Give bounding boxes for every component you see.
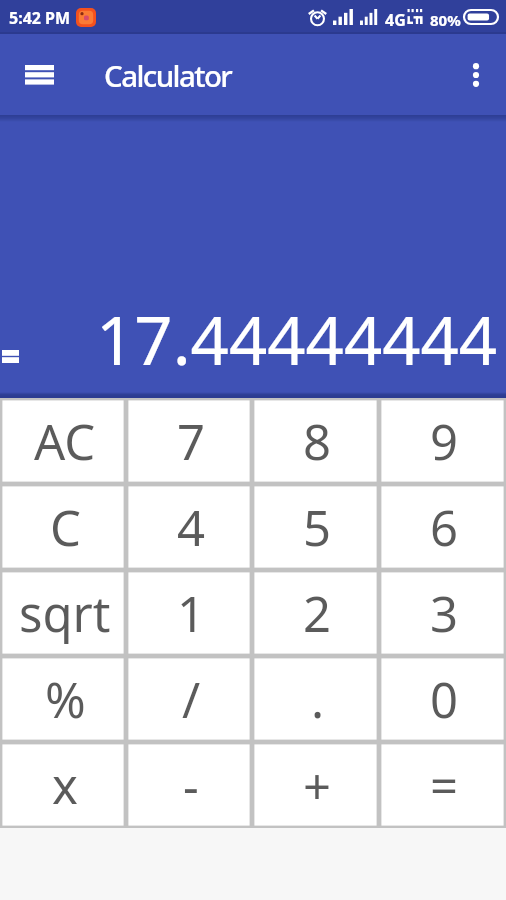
button[interactable]: C bbox=[0, 484, 126, 570]
staticText: 5 bbox=[303, 494, 332, 561]
staticText: 2 bbox=[303, 580, 332, 647]
staticText: 5:42 PM bbox=[9, 7, 71, 29]
button[interactable]: 9 bbox=[379, 398, 506, 484]
button[interactable]: 7 bbox=[126, 398, 252, 484]
staticText: 4 bbox=[177, 494, 206, 561]
staticText: x bbox=[52, 752, 78, 819]
staticText: + bbox=[303, 752, 332, 819]
staticText: - bbox=[183, 752, 199, 819]
staticText: 4G bbox=[385, 9, 406, 31]
button[interactable]: / bbox=[126, 656, 252, 742]
staticText: 6 bbox=[430, 494, 459, 561]
button[interactable]: 0 bbox=[379, 656, 506, 742]
button[interactable]: Menu bbox=[25, 65, 54, 85]
staticText: . bbox=[311, 666, 325, 733]
staticText: 7 bbox=[177, 408, 206, 475]
button[interactable]: . bbox=[252, 656, 379, 742]
button[interactable]: 5 bbox=[252, 484, 379, 570]
staticText: 3 bbox=[430, 580, 459, 647]
button[interactable]: = bbox=[379, 742, 506, 828]
staticText: 8 bbox=[303, 408, 332, 475]
button[interactable]: 1 bbox=[126, 570, 252, 656]
staticText: % bbox=[45, 666, 86, 733]
staticText: / bbox=[182, 666, 201, 733]
button[interactable]: sqrt bbox=[0, 570, 126, 656]
staticText: 0 bbox=[430, 666, 459, 733]
button[interactable]: x bbox=[0, 742, 126, 828]
staticText: sqrt bbox=[19, 580, 111, 647]
staticText: 9 bbox=[430, 408, 459, 475]
staticText: 80% bbox=[430, 10, 461, 30]
button[interactable]: - bbox=[126, 742, 252, 828]
button[interactable]: More options bbox=[464, 61, 488, 89]
button[interactable]: 8 bbox=[252, 398, 379, 484]
button[interactable]: % bbox=[0, 656, 126, 742]
button[interactable]: 4 bbox=[126, 484, 252, 570]
button[interactable]: + bbox=[252, 742, 379, 828]
staticText: = bbox=[430, 752, 459, 819]
staticText: 1 bbox=[177, 580, 206, 647]
button[interactable]: 6 bbox=[379, 484, 506, 570]
staticText: AC bbox=[34, 408, 96, 475]
staticText: Calculator bbox=[104, 55, 232, 95]
staticText: C bbox=[50, 494, 81, 561]
button[interactable]: 3 bbox=[379, 570, 506, 656]
button[interactable]: 2 bbox=[252, 570, 379, 656]
staticText: 17.44444444 bbox=[96, 293, 498, 384]
button[interactable]: AC bbox=[0, 398, 126, 484]
